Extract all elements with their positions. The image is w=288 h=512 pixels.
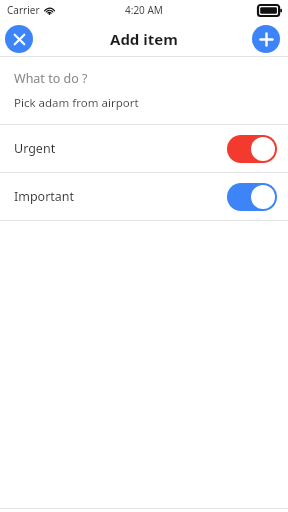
staticText: Important xyxy=(14,188,75,205)
staticText: Carrier xyxy=(7,3,40,17)
staticText: Add item xyxy=(110,29,178,49)
staticText: Urgent xyxy=(14,140,56,157)
button[interactable]: Urgent xyxy=(0,125,288,172)
staticText: What to do ? xyxy=(14,70,88,87)
other: Toggle xyxy=(227,183,277,211)
button[interactable]: Add xyxy=(252,25,280,53)
staticText: Pick adam from airport xyxy=(14,95,139,111)
staticText: 4:20 AM xyxy=(125,3,163,17)
button[interactable]: What to do ? xyxy=(0,57,288,124)
button[interactable]: Important xyxy=(0,173,288,220)
other: Toggle xyxy=(227,135,277,163)
button[interactable]: Close xyxy=(5,25,33,53)
